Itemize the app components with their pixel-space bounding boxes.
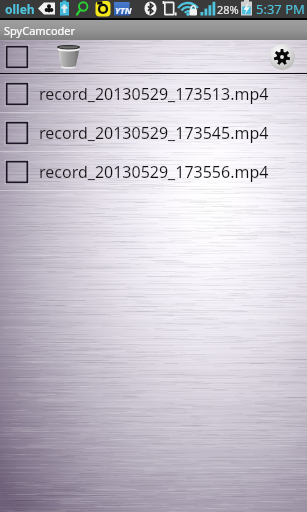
button[interactable]: Select all [5,45,29,69]
button[interactable]: record_20130529_173556.mp4 [0,152,307,191]
staticText: 5:37 PM [256,0,305,18]
staticText: YTN [115,4,132,16]
staticText: SpyCamcoder [4,23,76,38]
button[interactable]: record_20130529_173545.mp4 [0,113,307,152]
button[interactable]: Delete [57,45,80,69]
staticText: record_20130529_173545.mp4 [39,122,269,144]
button[interactable]: record_20130529_173513.mp4 [0,74,307,113]
staticText: record_20130529_173513.mp4 [39,83,269,105]
button[interactable]: Settings [269,44,295,70]
staticText: olleh [5,1,35,17]
staticText: record_20130529_173556.mp4 [39,161,269,183]
staticText: 28% [217,2,239,17]
